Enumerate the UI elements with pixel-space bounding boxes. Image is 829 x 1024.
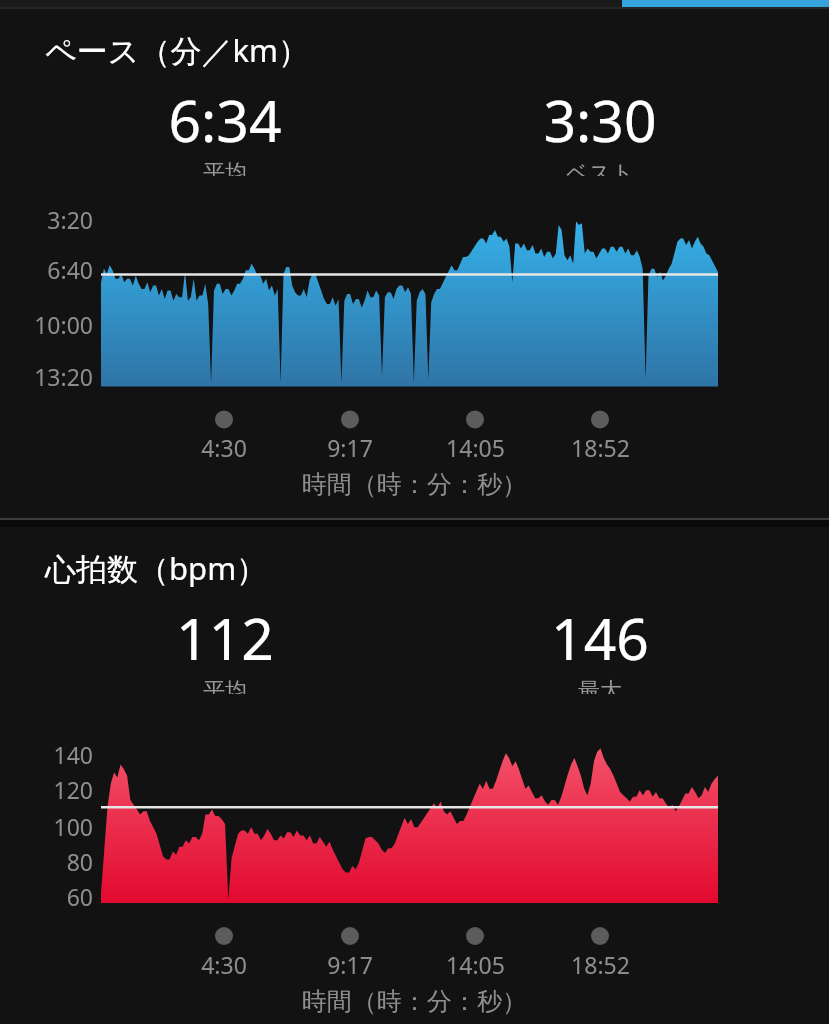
staticText: 時間（時：分：秒） — [302, 986, 527, 1017]
staticText: ペース（分／km） — [45, 29, 309, 71]
button[interactable]: 112 — [105, 599, 345, 694]
staticText: 4:30 — [201, 949, 247, 979]
staticText: 6:40 — [47, 254, 93, 282]
staticText: 3:20 — [47, 204, 93, 232]
staticText: 9:17 — [327, 949, 373, 979]
button[interactable]: 心拍数（bpm） — [45, 547, 268, 589]
staticText: 6:34 — [168, 81, 282, 159]
staticText: 146 — [551, 599, 649, 677]
staticText: 14:05 — [446, 432, 505, 462]
staticText: 13:20 — [34, 361, 93, 389]
staticText: 14:05 — [446, 949, 505, 979]
staticText: 3:30 — [543, 81, 657, 159]
staticText: 最大 — [578, 677, 622, 694]
staticText: 18:52 — [571, 432, 630, 462]
button[interactable]: 146 — [480, 599, 720, 694]
staticText: 時間（時：分：秒） — [302, 469, 527, 500]
staticText: 10:00 — [34, 309, 93, 337]
staticText: 100 — [53, 811, 93, 839]
staticText: 120 — [53, 774, 93, 802]
staticText: 9:17 — [327, 432, 373, 462]
button[interactable]: 3:30 — [480, 81, 720, 176]
staticText: 60 — [66, 881, 93, 909]
staticText: 平均 — [203, 159, 247, 176]
button[interactable]: 6:34 — [105, 81, 345, 176]
staticText: 140 — [53, 739, 93, 767]
staticText: 平均 — [203, 677, 247, 694]
staticText: 4:30 — [201, 432, 247, 462]
staticText: 112 — [176, 599, 274, 677]
staticText: ベスト — [566, 159, 634, 176]
staticText: 80 — [66, 846, 93, 874]
staticText: 18:52 — [571, 949, 630, 979]
staticText: 心拍数（bpm） — [45, 547, 268, 589]
button[interactable]: ペース（分／km） — [45, 29, 309, 71]
